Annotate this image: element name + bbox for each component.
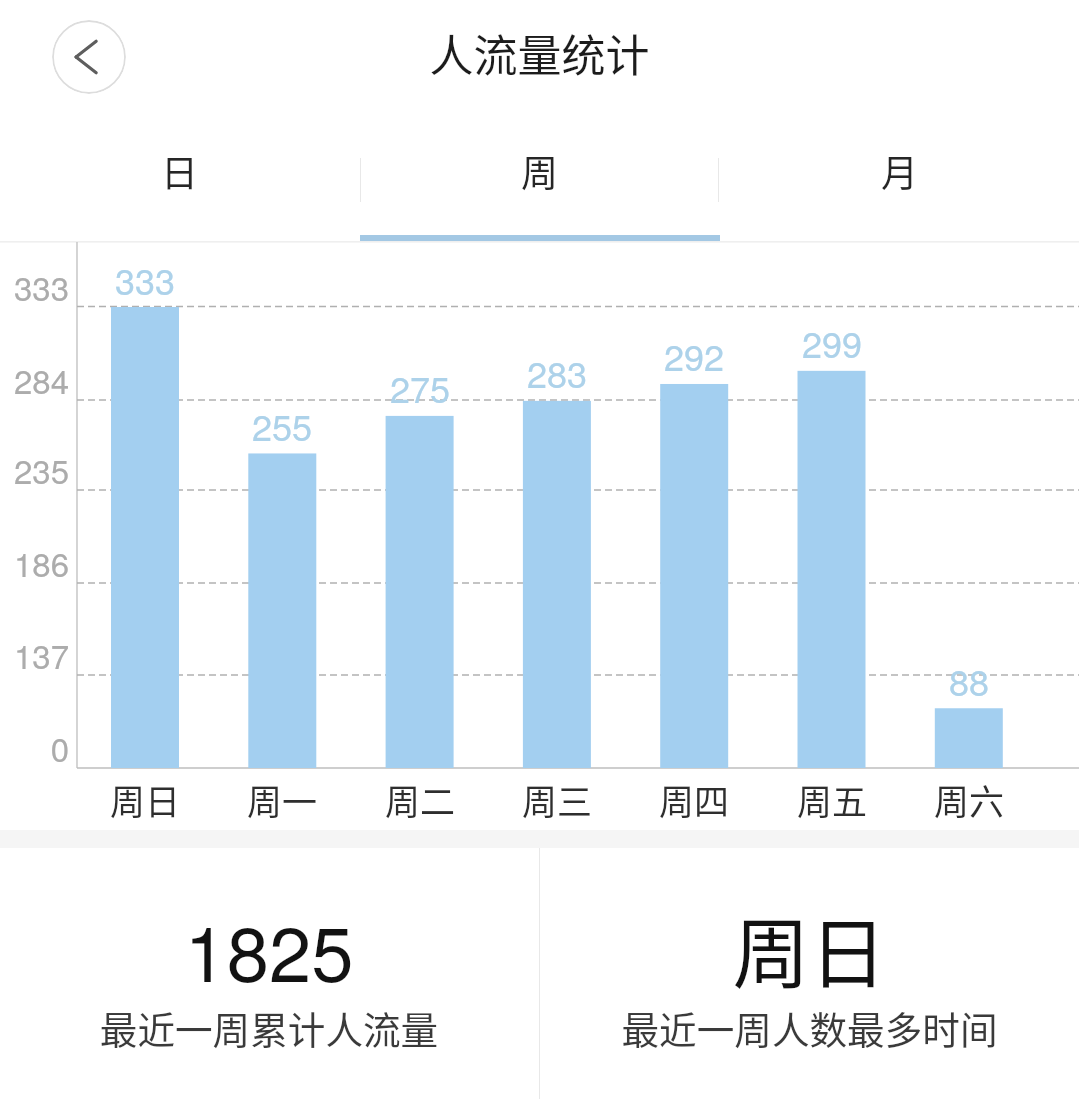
staticText: 周一 <box>202 774 362 825</box>
staticText: 1825 <box>0 895 538 1004</box>
staticText: 88 <box>889 655 1049 707</box>
staticText: 255 <box>202 400 362 452</box>
staticText: 最近一周人数最多时间 <box>540 1000 1079 1054</box>
button[interactable]: 周 <box>359 144 719 243</box>
staticText: 275 <box>340 362 500 414</box>
staticText: 月 <box>881 144 918 198</box>
staticText: 周四 <box>614 774 774 825</box>
staticText: 最近一周累计人流量 <box>0 1000 538 1054</box>
button[interactable]: 1825 <box>0 848 538 1099</box>
staticText: 235 <box>0 446 69 493</box>
staticText: 0 <box>0 724 69 771</box>
staticText: 日 <box>161 144 198 198</box>
staticText: 299 <box>752 317 912 369</box>
staticText: 周六 <box>889 774 1049 825</box>
button[interactable]: 月 <box>719 144 1079 243</box>
staticText: 292 <box>614 330 774 382</box>
staticText: 137 <box>0 631 69 678</box>
staticText: 周三 <box>477 774 637 825</box>
staticText: 周二 <box>340 774 500 825</box>
staticText: 283 <box>477 347 637 399</box>
staticText: 284 <box>0 356 69 403</box>
staticText: 186 <box>0 539 69 586</box>
button[interactable]: 日 <box>0 144 359 243</box>
staticText: 周日 <box>540 893 1079 1004</box>
staticText: 人流量统计 <box>0 21 1079 85</box>
staticText: 周五 <box>752 774 912 825</box>
staticText: 周 <box>521 144 558 198</box>
staticText: 333 <box>0 263 69 310</box>
button[interactable]: Back <box>52 20 126 94</box>
staticText: 333 <box>65 254 225 306</box>
staticText: 周日 <box>65 774 225 825</box>
button[interactable]: 周日 <box>540 848 1079 1099</box>
